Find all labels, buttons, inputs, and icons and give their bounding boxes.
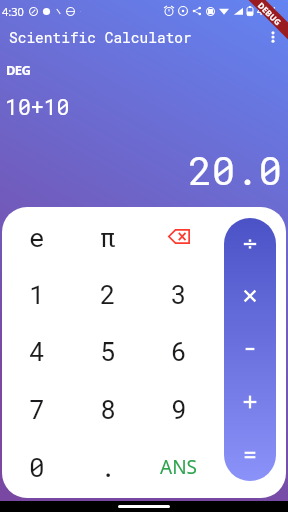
staticText: 8 (100, 392, 116, 426)
staticText: 7 (29, 392, 45, 426)
staticText: 2 (100, 277, 116, 311)
button[interactable]: 1 (2, 265, 72, 322)
button[interactable]: e (2, 208, 72, 265)
staticText: ANS (160, 454, 198, 480)
button[interactable]: ANS (143, 438, 214, 496)
button[interactable]: minus (224, 322, 276, 375)
button[interactable]: 0 (2, 438, 72, 496)
button[interactable]: 6 (143, 322, 214, 380)
staticText: 5 (100, 334, 116, 368)
button[interactable]: 7 (2, 380, 72, 438)
staticText: 3 (171, 277, 187, 311)
staticText: 1 (29, 277, 45, 311)
button[interactable]: 3 (143, 265, 214, 322)
staticText: 0 (29, 450, 45, 484)
button[interactable]: plus (224, 375, 276, 428)
button[interactable]: 8 (72, 380, 143, 438)
staticText: 10+10 (5, 92, 70, 120)
staticText: 42% (257, 4, 277, 18)
button[interactable]: equals (224, 428, 276, 481)
button[interactable]: 9 (143, 380, 214, 438)
button[interactable]: π (72, 208, 143, 265)
staticText: Scientific Calculator (9, 28, 192, 47)
button[interactable]: More options (258, 22, 288, 52)
staticText: 20.0 (0, 144, 282, 195)
button[interactable]: 4 (2, 322, 72, 380)
staticText: 9 (171, 392, 187, 426)
button[interactable]: Delete (143, 208, 214, 265)
staticText: DEG (6, 61, 31, 79)
staticText: 4:30 (2, 4, 24, 19)
staticText: π (100, 220, 116, 254)
button[interactable]: 2 (72, 265, 143, 322)
staticText: 6 (171, 334, 187, 368)
button[interactable]: . (72, 438, 143, 496)
button[interactable]: divide (224, 218, 276, 270)
staticText: DEBUG (256, 0, 284, 28)
staticText: e (29, 220, 45, 254)
button[interactable]: times (224, 270, 276, 322)
staticText: . (100, 450, 116, 484)
button[interactable]: 5 (72, 322, 143, 380)
staticText: 4 (29, 334, 45, 368)
